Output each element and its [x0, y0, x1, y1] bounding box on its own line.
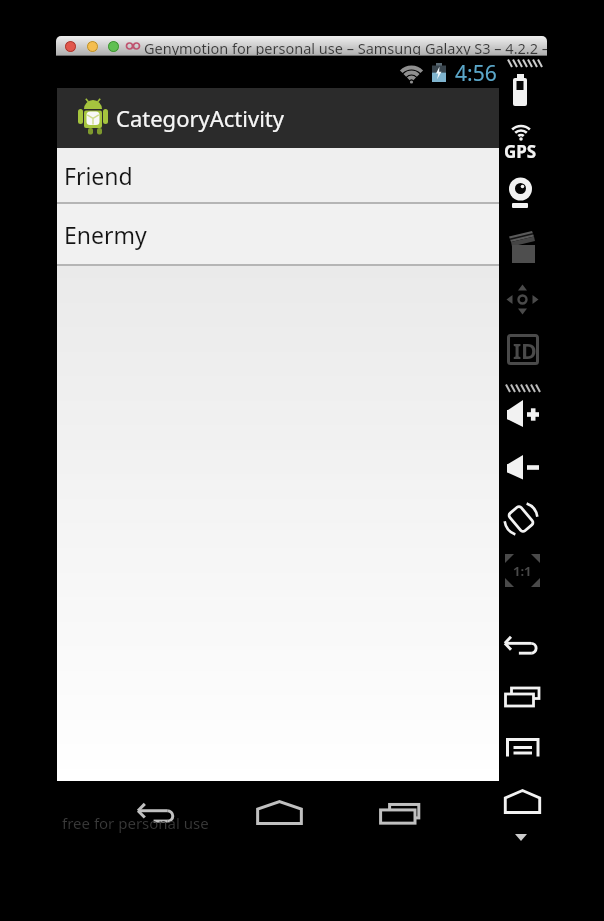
button[interactable]	[503, 172, 539, 212]
button[interactable]	[504, 636, 539, 655]
button[interactable]	[513, 74, 528, 106]
staticText: 1:1	[513, 562, 532, 580]
button[interactable]	[506, 284, 539, 315]
button[interactable]	[504, 789, 541, 814]
button[interactable]	[507, 455, 540, 480]
staticText: free for personal use	[62, 813, 209, 833]
button[interactable]	[507, 334, 539, 365]
staticText: Genymotion for personal use – Samsung Ga…	[144, 38, 547, 56]
staticText: Enermy	[64, 219, 147, 250]
button[interactable]	[87, 41, 98, 52]
button[interactable]	[256, 800, 303, 825]
button[interactable]	[515, 834, 527, 842]
staticText: CategoryActivity	[116, 103, 284, 133]
button[interactable]	[504, 553, 541, 588]
button[interactable]	[380, 803, 420, 824]
staticText: 4:56	[455, 59, 497, 88]
button[interactable]	[137, 803, 176, 823]
staticText: ID	[513, 337, 537, 366]
staticText: GPS	[504, 140, 537, 163]
button[interactable]	[506, 738, 540, 759]
button[interactable]	[507, 400, 540, 428]
button[interactable]	[502, 499, 540, 541]
button[interactable]	[505, 687, 540, 707]
button[interactable]	[108, 41, 119, 52]
button[interactable]: Enermy	[57, 204, 499, 264]
staticText: Friend	[64, 160, 133, 191]
button[interactable]	[505, 123, 537, 161]
button[interactable]	[65, 41, 76, 52]
button[interactable]: Friend	[57, 148, 499, 202]
button[interactable]	[509, 231, 536, 263]
